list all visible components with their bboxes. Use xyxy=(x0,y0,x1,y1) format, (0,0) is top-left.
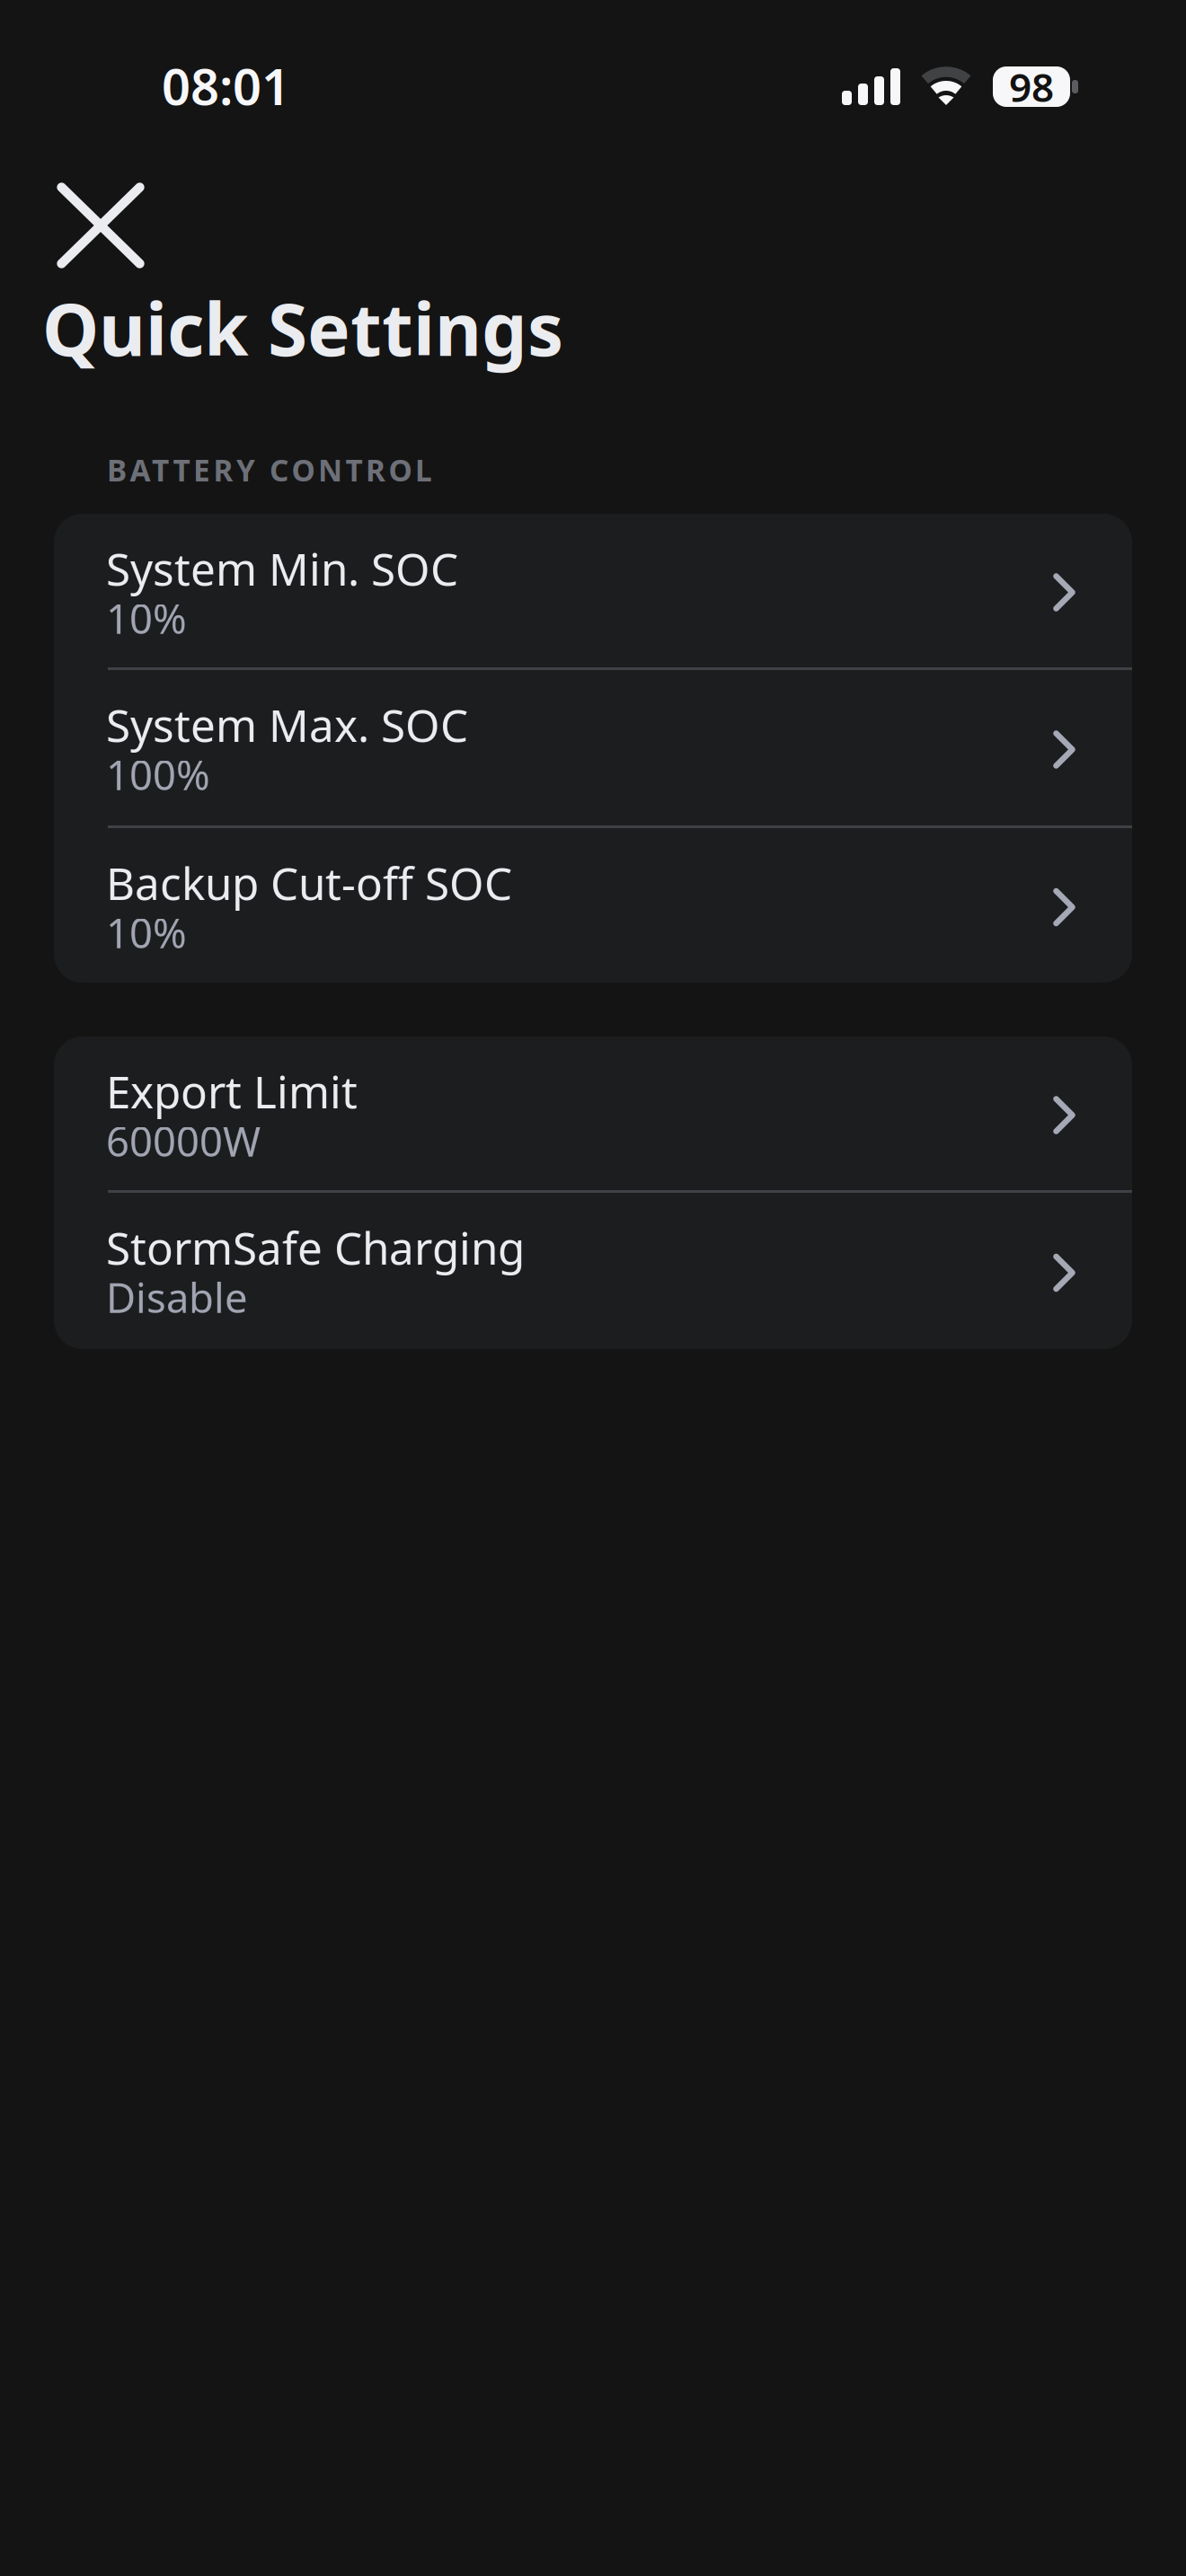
staticText: System Max. SOC xyxy=(106,695,468,754)
staticText: System Min. SOC xyxy=(106,539,458,598)
button[interactable]: Backup Cut-off SOC xyxy=(54,828,1132,983)
staticText: 60000W xyxy=(106,1114,261,1168)
button[interactable]: System Min. SOC xyxy=(54,514,1132,667)
staticText: 100% xyxy=(106,747,210,801)
staticText: 08:01 xyxy=(162,52,290,119)
button[interactable]: Close xyxy=(25,151,176,300)
staticText: StormSafe Charging xyxy=(106,1218,525,1277)
staticText: Disable xyxy=(106,1270,248,1324)
staticText: 10% xyxy=(106,591,187,645)
button[interactable]: StormSafe Charging xyxy=(54,1193,1132,1349)
staticText: BATTERY CONTROL xyxy=(107,450,432,490)
staticText: Export Limit xyxy=(106,1062,358,1120)
staticText: 10% xyxy=(106,905,187,959)
staticText: 98 xyxy=(1009,60,1054,113)
button[interactable]: System Max. SOC xyxy=(54,670,1132,825)
staticText: Backup Cut-off SOC xyxy=(106,853,512,912)
staticText: Quick Settings xyxy=(42,280,563,376)
button[interactable]: Export Limit xyxy=(54,1037,1132,1190)
